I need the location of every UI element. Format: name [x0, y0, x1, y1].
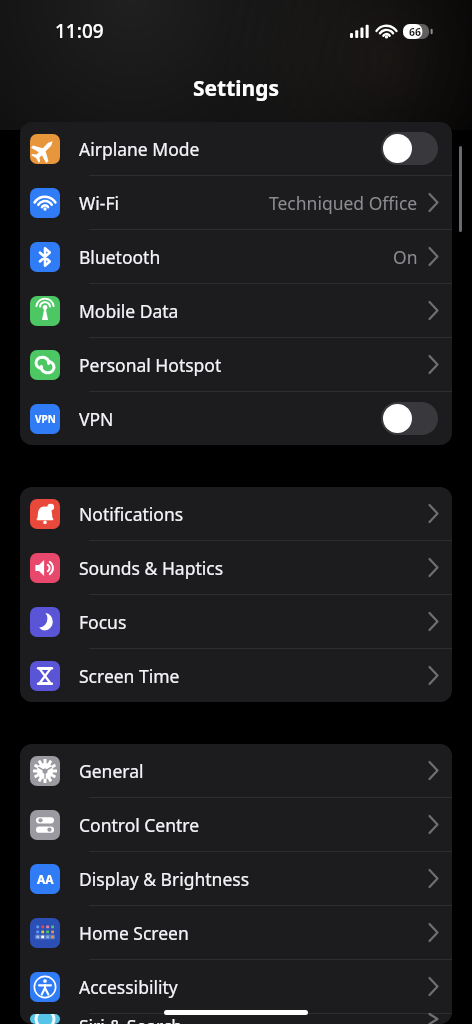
staticText: Screen Time — [79, 664, 180, 688]
staticText: Sounds & Haptics — [79, 556, 224, 580]
staticText: VPN — [79, 407, 114, 431]
button[interactable]: Home Screen — [20, 906, 452, 960]
staticText: Focus — [79, 610, 127, 634]
button[interactable]: Airplane Mode — [20, 122, 452, 176]
staticText: AA — [37, 871, 54, 887]
button[interactable]: Sounds & Haptics — [20, 541, 452, 595]
staticText: 11:09 — [55, 18, 104, 44]
button[interactable]: Focus — [20, 595, 452, 649]
button[interactable]: Notifications — [20, 487, 452, 541]
staticText: Control Centre — [79, 813, 200, 837]
staticText: Settings — [193, 74, 280, 103]
staticText: General — [79, 759, 144, 783]
staticText: Techniqued Office — [269, 191, 418, 215]
button[interactable]: Siri & Search — [20, 1014, 452, 1024]
staticText: Accessibility — [79, 975, 178, 999]
button[interactable]: Screen Time — [20, 649, 452, 702]
staticText: VPN — [35, 412, 56, 426]
button[interactable]: Bluetooth — [20, 230, 452, 284]
button[interactable]: Personal Hotspot — [20, 338, 452, 392]
staticText: Bluetooth — [79, 245, 161, 269]
button[interactable]: AA — [20, 852, 452, 906]
button[interactable]: Airplane Mode toggle, off — [381, 132, 438, 165]
staticText: Mobile Data — [79, 299, 179, 323]
button[interactable]: Control Centre — [20, 798, 452, 852]
staticText: 66 — [409, 25, 422, 39]
staticText: Home Screen — [79, 921, 189, 945]
button[interactable]: Mobile Data — [20, 284, 452, 338]
staticText: On — [393, 245, 418, 269]
staticText: Airplane Mode — [79, 137, 200, 161]
button[interactable]: Accessibility — [20, 960, 452, 1014]
button[interactable]: Wi-Fi — [20, 176, 452, 230]
button[interactable]: VPN — [20, 392, 452, 445]
staticText: Notifications — [79, 502, 184, 526]
button[interactable]: General — [20, 744, 452, 798]
staticText: Wi-Fi — [79, 191, 120, 215]
staticText: Display & Brightness — [79, 867, 250, 891]
staticText: Siri & Search — [79, 1014, 183, 1024]
button[interactable]: VPN toggle, off — [381, 402, 438, 435]
staticText: Personal Hotspot — [79, 353, 222, 377]
